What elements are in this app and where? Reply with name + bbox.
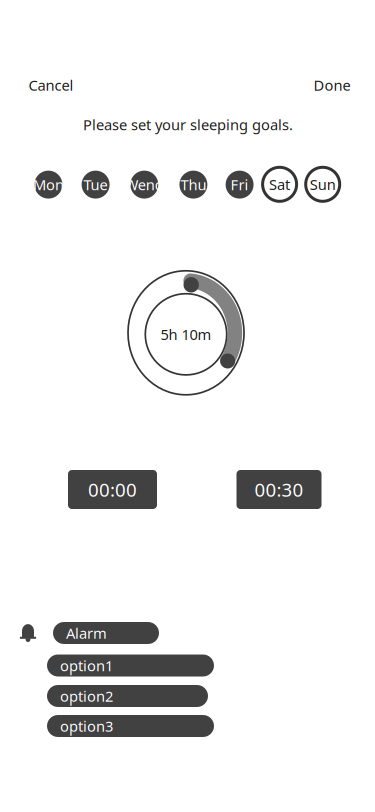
staticText: 00:30 xyxy=(254,477,303,502)
button[interactable]: Wend xyxy=(126,166,162,203)
staticText: Wend xyxy=(125,175,164,194)
button[interactable]: option3 xyxy=(47,715,214,737)
staticText: Thu xyxy=(180,175,206,194)
staticText: 00:00 xyxy=(88,477,137,502)
staticText: option2 xyxy=(60,686,113,706)
button[interactable]: 00:30 xyxy=(236,470,321,509)
button[interactable]: Thu xyxy=(175,166,211,203)
button[interactable]: option2 xyxy=(47,685,208,707)
button[interactable]: Alarm xyxy=(53,622,159,644)
staticText: Please set your sleeping goals. xyxy=(83,115,293,134)
staticText: Done xyxy=(313,75,350,95)
staticText: Sat xyxy=(269,175,290,194)
button[interactable]: Sun xyxy=(305,166,341,203)
staticText: option1 xyxy=(60,656,113,675)
staticText: Cancel xyxy=(28,75,73,95)
staticText: option3 xyxy=(60,716,113,736)
button[interactable]: Sat xyxy=(262,166,298,203)
staticText: Sun xyxy=(310,175,336,194)
staticText: 5h 10m xyxy=(160,325,211,344)
button[interactable]: Fri xyxy=(222,166,258,203)
staticText: Alarm xyxy=(66,623,107,643)
button[interactable]: option1 xyxy=(47,654,214,676)
button[interactable]: Done xyxy=(303,67,360,103)
button[interactable]: Cancel xyxy=(18,67,83,103)
button[interactable]: Mon xyxy=(30,166,66,203)
staticText: Mon xyxy=(33,175,64,194)
staticText: Tue xyxy=(84,175,108,194)
button[interactable]: Tue xyxy=(78,166,114,203)
staticText: Fri xyxy=(231,175,249,194)
button[interactable]: 00:00 xyxy=(68,470,157,509)
